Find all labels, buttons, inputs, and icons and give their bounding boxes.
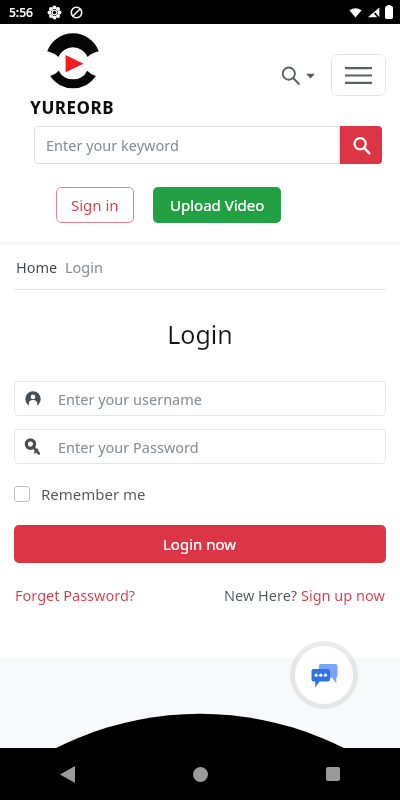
button[interactable]: Chat: [290, 641, 358, 709]
staticText: Remember me: [41, 484, 146, 504]
button[interactable]: Home: [16, 257, 58, 277]
staticText: New Here?: [224, 585, 301, 605]
button[interactable]: Sign up now: [301, 585, 385, 605]
button[interactable]: Forget Password?: [15, 585, 136, 605]
staticText: Sign in: [71, 195, 119, 215]
button[interactable]: Enter your keyword: [34, 126, 340, 164]
button[interactable]: Search options: [277, 58, 319, 93]
button[interactable]: Menu: [331, 54, 386, 96]
button[interactable]: Recents: [309, 750, 357, 798]
button[interactable]: Login now: [14, 525, 386, 563]
staticText: Enter your Password: [58, 437, 199, 457]
button[interactable]: Enter your Password: [14, 429, 386, 464]
staticText: Enter your keyword: [46, 135, 179, 155]
staticText: Login: [65, 257, 103, 277]
button[interactable]: Home: [176, 750, 224, 798]
button[interactable]: Enter your username: [14, 381, 386, 416]
button[interactable]: YUREORB: [30, 32, 115, 119]
staticText: Login: [0, 317, 400, 351]
button[interactable]: Sign in: [56, 187, 134, 223]
button[interactable]: Back: [43, 750, 91, 798]
button[interactable]: Upload Video: [153, 187, 281, 223]
button[interactable]: Remember me: [13, 480, 147, 508]
staticText: Login now: [163, 534, 237, 554]
staticText: Upload Video: [170, 195, 265, 215]
button[interactable]: Search: [340, 126, 382, 164]
staticText: Enter your username: [58, 389, 202, 409]
staticText: YUREORB: [30, 96, 115, 119]
staticText: 5:56: [9, 4, 33, 20]
